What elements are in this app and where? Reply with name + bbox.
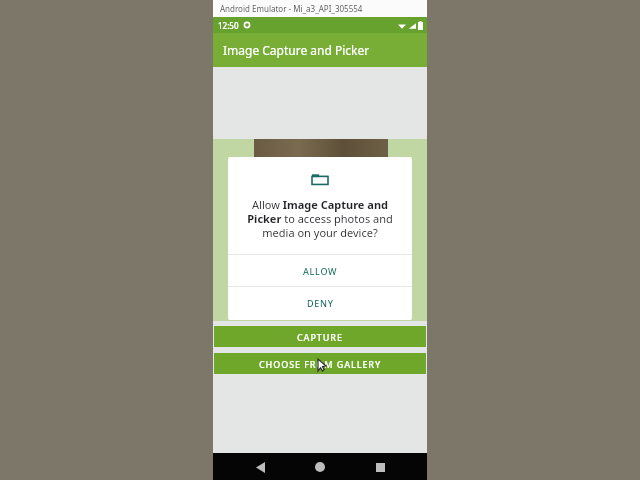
button[interactable]: CHOOSE FROM GALLERY: [214, 353, 426, 374]
staticText: CAPTURE: [297, 331, 343, 343]
staticText: Image Capture and Picker: [223, 42, 370, 58]
staticText: DENY: [307, 297, 334, 309]
button[interactable]: CAPTURE: [214, 326, 426, 347]
button[interactable]: Recent apps: [367, 454, 393, 480]
button[interactable]: DENY: [228, 287, 412, 318]
staticText: CHOOSE FROM GALLERY: [259, 358, 382, 370]
staticText: ALLOW: [303, 265, 338, 277]
staticText: Android Emulator - Mi_a3_API_305554: [220, 3, 363, 14]
button[interactable]: Back: [247, 454, 273, 480]
staticText: Allow Image Capture and Picker to access…: [242, 197, 398, 240]
staticText: 12:50: [218, 20, 239, 31]
button[interactable]: ALLOW: [228, 255, 412, 286]
button[interactable]: Home: [307, 454, 333, 480]
